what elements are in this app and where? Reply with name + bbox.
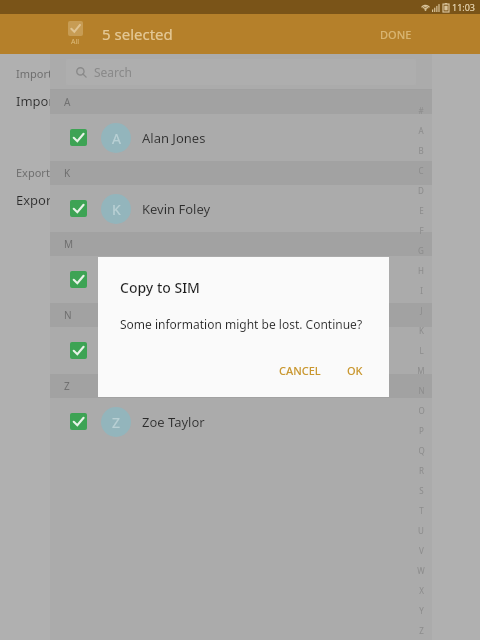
staticText: K	[64, 166, 71, 180]
staticText: Search	[94, 64, 132, 80]
button[interactable]: Selected	[50, 398, 432, 445]
staticText: U	[418, 525, 424, 536]
staticText: CANCEL	[279, 363, 321, 378]
other: Selected	[70, 129, 87, 146]
staticText: M	[110, 271, 123, 290]
staticText: T	[419, 505, 424, 516]
staticText: B	[418, 145, 424, 156]
button[interactable]: Import	[0, 87, 480, 114]
staticText: OK	[347, 363, 363, 378]
staticText: S	[419, 485, 424, 496]
staticText: 11:03	[452, 1, 476, 13]
staticText: Import	[16, 66, 52, 81]
button[interactable]: Select all	[66, 21, 85, 47]
staticText: A	[112, 129, 121, 148]
staticText: K	[419, 325, 424, 336]
button[interactable]: Selected	[50, 327, 432, 374]
staticText: Export	[16, 165, 50, 180]
button[interactable]: DONE	[374, 21, 418, 48]
button[interactable]: Search	[66, 59, 416, 85]
staticText: Z	[64, 379, 70, 393]
staticText: M	[417, 365, 425, 376]
staticText: I	[420, 285, 423, 296]
staticText: L	[419, 345, 424, 356]
staticText: #	[418, 105, 424, 116]
staticText: O	[418, 405, 425, 416]
staticText: Some information might be lost. Continue…	[120, 316, 363, 332]
button[interactable]: CANCEL	[271, 358, 329, 383]
other: Selected	[70, 200, 87, 217]
other: Selected	[70, 342, 87, 359]
other: Selected	[70, 413, 87, 430]
staticText: A	[418, 125, 424, 136]
button[interactable]: Export	[0, 186, 480, 213]
staticText: C	[418, 165, 424, 176]
staticText: F	[419, 225, 424, 236]
staticText: W	[417, 565, 425, 576]
staticText: V	[419, 545, 424, 556]
staticText: N	[418, 385, 425, 396]
other: Selected	[70, 271, 87, 288]
staticText: DONE	[380, 27, 412, 42]
staticText: Zoe Taylor	[142, 413, 205, 431]
staticText: K	[112, 200, 121, 219]
staticText: All	[71, 37, 80, 47]
button[interactable]: Export	[0, 159, 480, 186]
button[interactable]: Selected	[50, 114, 432, 161]
staticText: Z	[419, 625, 424, 636]
staticText: J	[420, 305, 423, 316]
staticText: P	[419, 425, 424, 436]
staticText: D	[418, 185, 424, 196]
staticText: X	[419, 585, 424, 596]
button[interactable]: Alphabet index	[410, 100, 432, 640]
button[interactable]: Selected	[50, 185, 432, 232]
staticText: G	[418, 245, 424, 256]
staticText: Kevin Foley	[142, 200, 211, 218]
staticText: Q	[418, 445, 425, 456]
staticText: 5 selected	[102, 24, 173, 44]
button[interactable]: Selected	[50, 256, 432, 303]
staticText: E	[419, 205, 424, 216]
staticText: Y	[419, 605, 424, 616]
staticText: R	[419, 465, 424, 476]
staticText: H	[418, 265, 424, 276]
staticText: Export	[16, 191, 57, 209]
button[interactable]: Import	[0, 60, 480, 87]
staticText: Copy to SIM	[120, 278, 200, 297]
staticText: Z	[112, 413, 121, 432]
staticText: M	[64, 237, 74, 251]
button[interactable]: OK	[339, 358, 371, 383]
staticText: N	[64, 308, 72, 322]
staticText: Import	[16, 92, 59, 110]
staticText: A	[64, 95, 71, 109]
staticText: Alan Jones	[142, 129, 206, 147]
